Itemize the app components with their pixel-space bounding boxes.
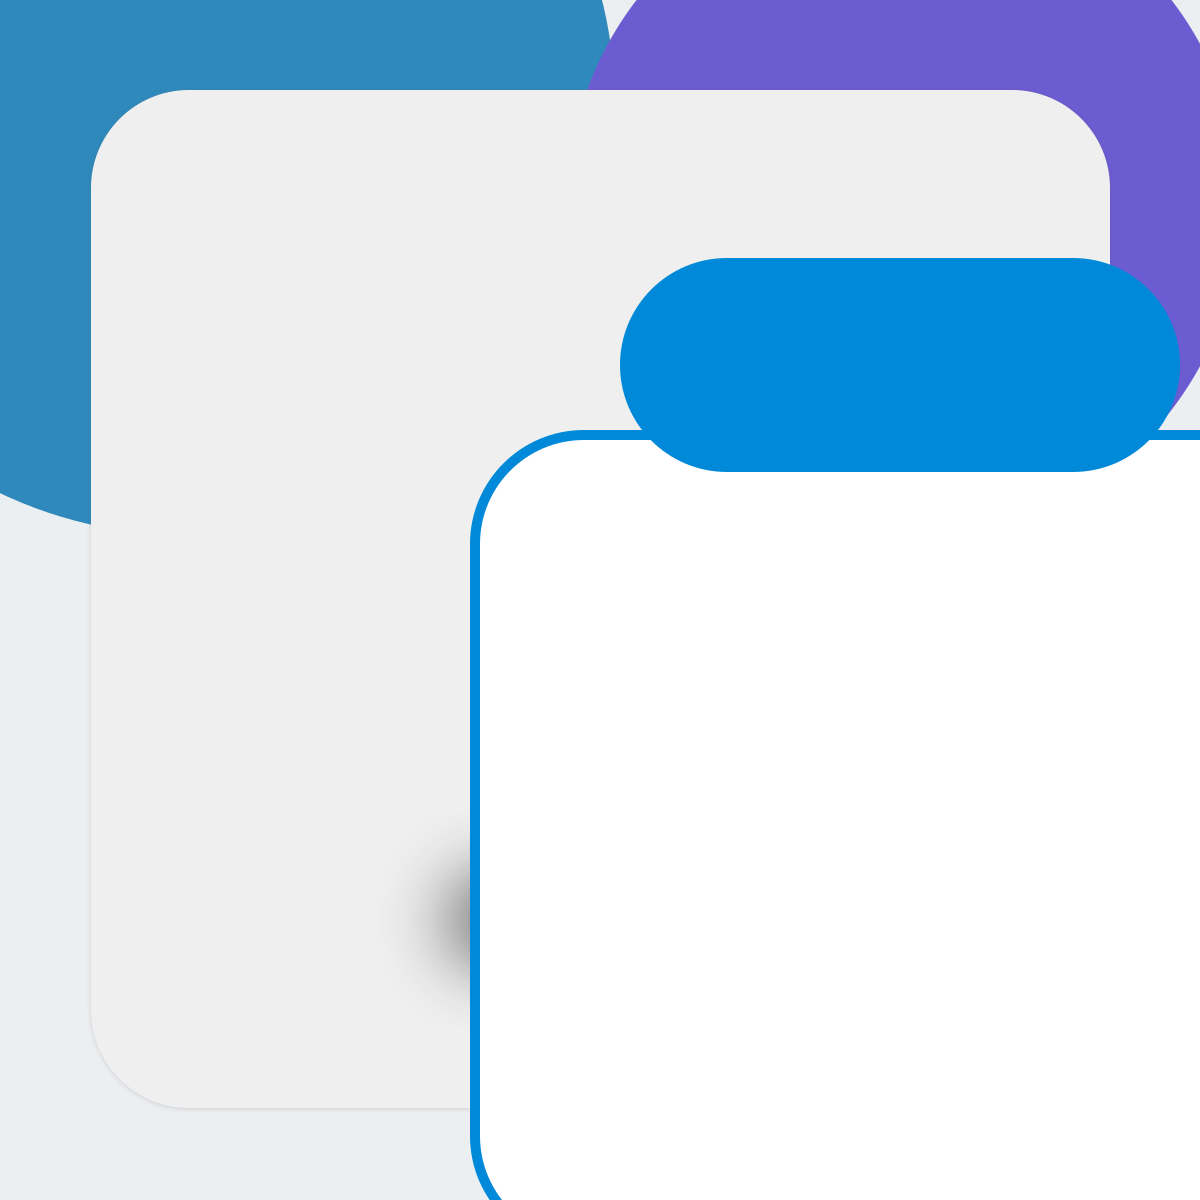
button[interactable] [620, 258, 1180, 472]
